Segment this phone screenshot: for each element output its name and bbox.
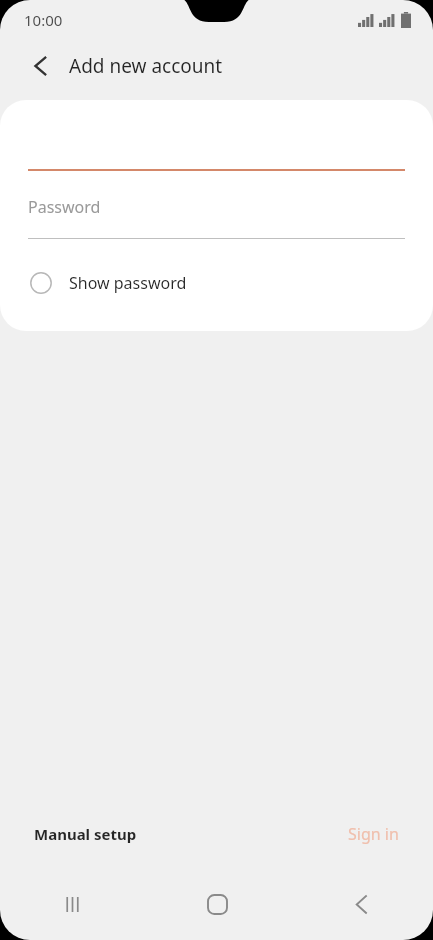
staticText: Show password	[69, 272, 187, 294]
button[interactable]: Password	[0, 193, 433, 239]
button[interactable]: Show password	[0, 261, 433, 305]
staticText: Add new account	[69, 53, 223, 79]
staticText: 10:00	[24, 10, 63, 30]
staticText: Password	[28, 196, 101, 218]
button[interactable]: Recent apps	[0, 882, 145, 926]
button[interactable]	[0, 100, 433, 171]
button[interactable]: Back	[22, 48, 58, 84]
button[interactable]: Home	[145, 882, 289, 926]
button[interactable]: Back	[289, 882, 433, 926]
button[interactable]: Manual setup	[28, 818, 143, 850]
staticText: Sign in	[348, 823, 399, 845]
staticText: Manual setup	[34, 824, 137, 844]
button[interactable]: Sign in	[342, 817, 405, 851]
